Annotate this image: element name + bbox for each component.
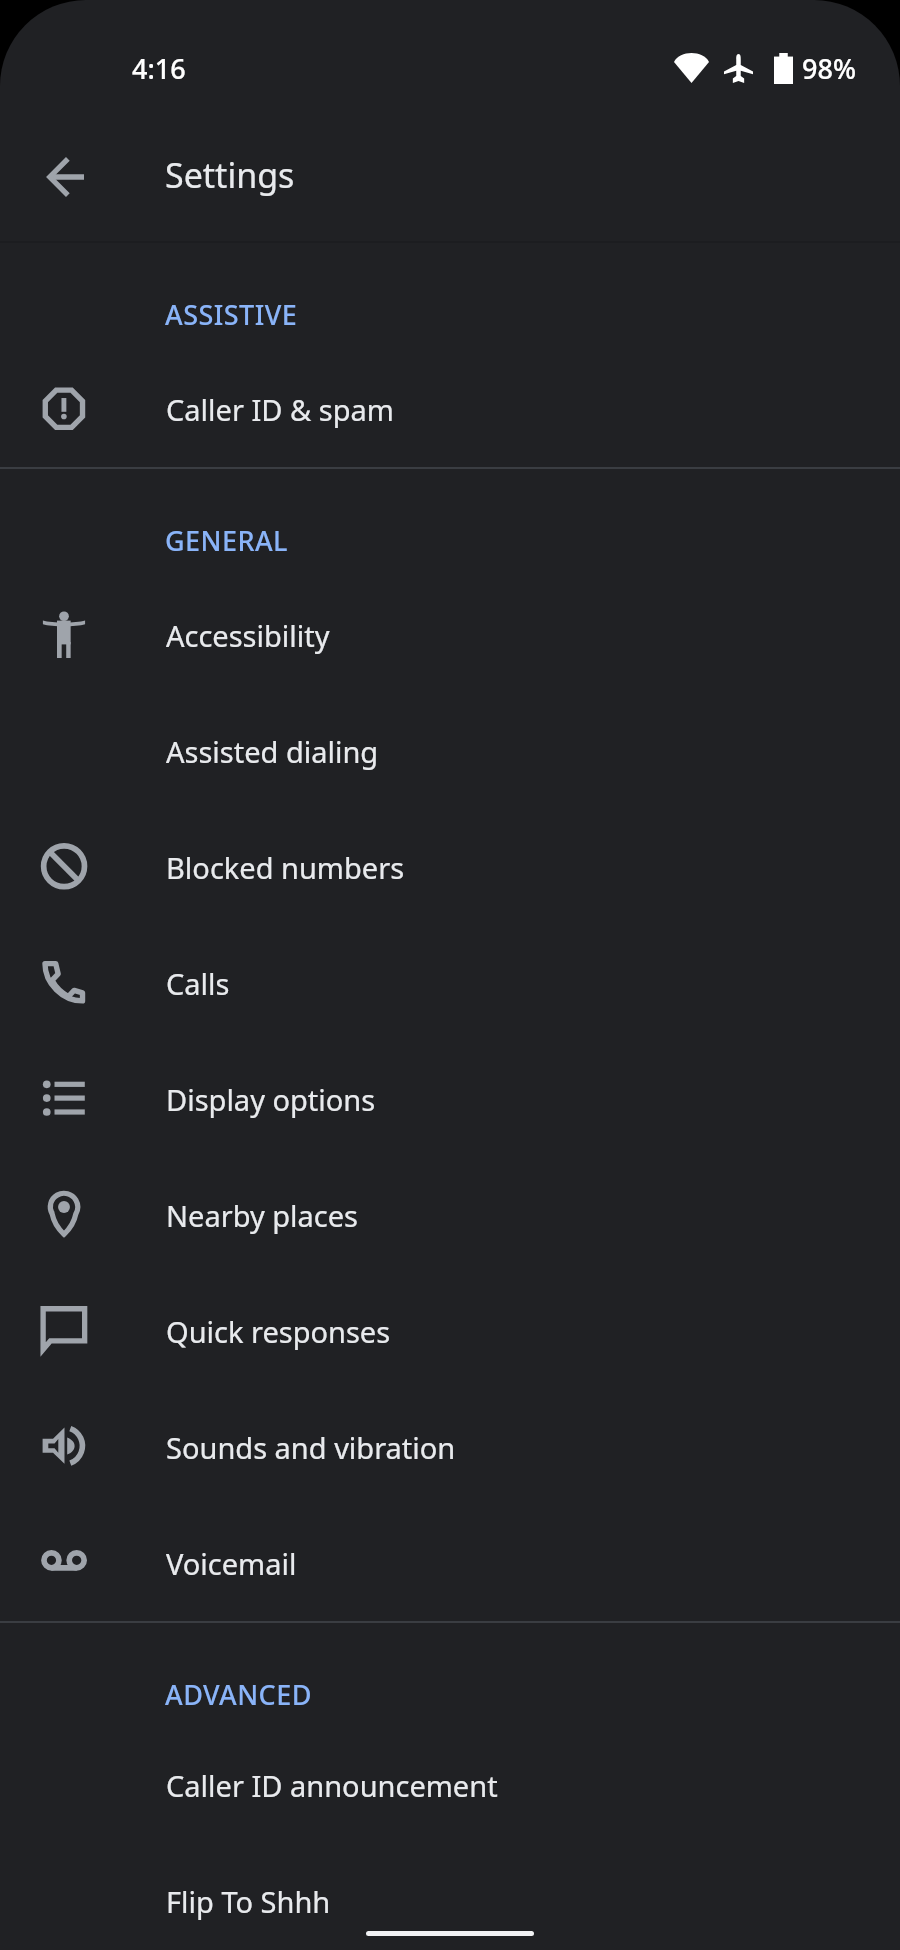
staticText: Assisted dialing xyxy=(166,732,379,771)
button[interactable]: Calls xyxy=(0,925,900,1041)
staticText: Caller ID & spam xyxy=(166,390,394,429)
button[interactable]: Quick responses xyxy=(0,1273,900,1389)
staticText: GENERAL xyxy=(165,522,288,559)
button[interactable]: Accessibility xyxy=(0,577,900,693)
button[interactable]: Display options xyxy=(0,1041,900,1157)
staticText: Display options xyxy=(166,1080,376,1119)
button[interactable]: Assisted dialing xyxy=(0,693,900,809)
button[interactable]: Sounds and vibration xyxy=(0,1389,900,1505)
staticText: ASSISTIVE xyxy=(165,296,298,333)
staticText: Nearby places xyxy=(166,1196,358,1235)
staticText: 4:16 xyxy=(132,50,186,87)
button[interactable]: Caller ID announcement xyxy=(0,1727,900,1843)
staticText: Blocked numbers xyxy=(166,848,405,887)
button[interactable]: Blocked numbers xyxy=(0,809,900,925)
staticText: Flip To Shhh xyxy=(166,1882,331,1921)
button[interactable]: Flip To Shhh xyxy=(0,1843,900,1950)
staticText: Voicemail xyxy=(166,1544,297,1583)
staticText: Sounds and vibration xyxy=(166,1428,456,1467)
staticText: ADVANCED xyxy=(165,1676,312,1713)
staticText: Quick responses xyxy=(166,1312,391,1351)
button[interactable]: Caller ID & spam xyxy=(0,351,900,467)
button[interactable]: Nearby places xyxy=(0,1157,900,1273)
staticText: Settings xyxy=(165,152,295,198)
staticText: Accessibility xyxy=(166,616,330,655)
staticText: Caller ID announcement xyxy=(166,1766,498,1805)
staticText: 98% xyxy=(802,50,856,87)
button[interactable]: Voicemail xyxy=(0,1505,900,1621)
button[interactable]: Back xyxy=(22,131,106,215)
staticText: Calls xyxy=(166,964,230,1003)
